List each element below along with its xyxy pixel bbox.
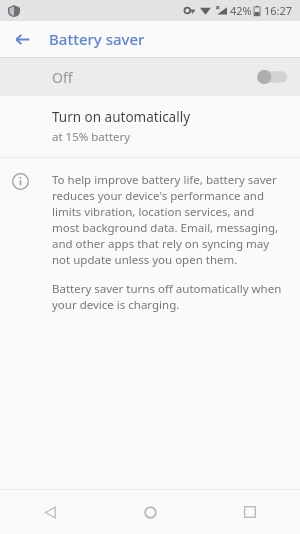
staticText: Off xyxy=(52,68,73,87)
staticText: Battery saver turns off automatically wh… xyxy=(52,281,284,313)
staticText: 42% xyxy=(230,3,252,18)
staticText: at 15% battery xyxy=(52,129,131,145)
staticText: Battery saver xyxy=(49,29,145,49)
staticText: Turn on automatically xyxy=(52,108,191,126)
other: Battery saver toggle, off xyxy=(254,65,288,89)
button[interactable]: Recent apps xyxy=(200,490,300,534)
staticText: To help improve battery life, battery sa… xyxy=(52,172,284,268)
button[interactable]: Navigate up xyxy=(9,26,35,52)
button[interactable]: Back xyxy=(0,490,100,534)
button[interactable]: Off xyxy=(0,58,300,96)
staticText: 16:27 xyxy=(264,3,293,18)
button[interactable]: Turn on automatically xyxy=(0,97,300,157)
button[interactable]: Home xyxy=(100,490,200,534)
